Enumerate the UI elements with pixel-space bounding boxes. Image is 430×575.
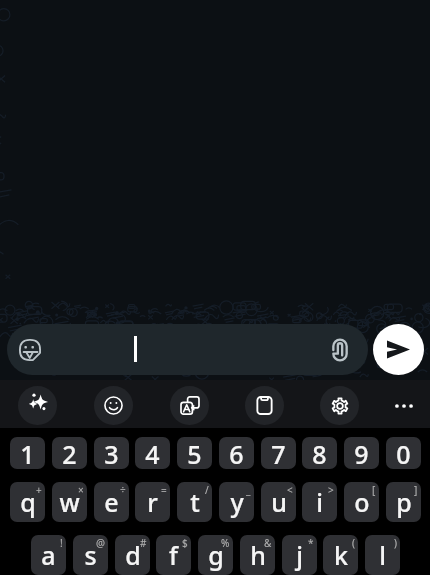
staticText: 8: [312, 437, 327, 469]
button[interactable]: t: [177, 482, 212, 522]
staticText: k: [334, 538, 348, 572]
staticText: r: [147, 485, 158, 519]
button[interactable]: y: [219, 482, 254, 522]
staticText: l: [379, 538, 386, 572]
staticText: >: [328, 483, 334, 497]
staticText: ]: [414, 483, 418, 497]
staticText: 5: [187, 437, 202, 469]
button[interactable]: a: [31, 535, 66, 575]
staticText: e: [104, 485, 119, 519]
button[interactable]: 5: [177, 437, 212, 469]
staticText: 4: [145, 437, 160, 469]
staticText: $: [182, 536, 188, 550]
button[interactable]: Send: [373, 324, 424, 375]
staticText: y: [230, 485, 244, 519]
staticText: p: [396, 485, 412, 519]
staticText: i: [316, 485, 323, 519]
staticText: #: [140, 536, 147, 550]
staticText: u: [271, 485, 287, 519]
button[interactable]: 2: [52, 437, 87, 469]
staticText: w: [59, 485, 80, 519]
staticText: h: [250, 538, 266, 572]
staticText: 6: [229, 437, 244, 469]
button[interactable]: s: [73, 535, 108, 575]
button[interactable]: j: [282, 535, 317, 575]
button[interactable]: 6: [219, 437, 254, 469]
button[interactable]: o: [344, 482, 379, 522]
button[interactable]: p: [386, 482, 421, 522]
button[interactable]: r: [135, 482, 170, 522]
button[interactable]: 1: [10, 437, 45, 469]
button[interactable]: u: [261, 482, 296, 522]
staticText: 0: [396, 437, 411, 469]
button[interactable]: q: [10, 482, 45, 522]
staticText: 1: [20, 437, 35, 469]
button[interactable]: l: [365, 535, 400, 575]
staticText: g: [208, 538, 224, 572]
button[interactable]: Stickers: [7, 324, 368, 375]
staticText: @: [96, 536, 105, 550]
staticText: j: [296, 538, 303, 572]
staticText: f: [169, 538, 178, 572]
button[interactable]: f: [156, 535, 191, 575]
staticText: ÷: [120, 483, 126, 497]
button[interactable]: Clipboard: [245, 386, 284, 425]
staticText: *: [308, 536, 314, 550]
button[interactable]: w: [52, 482, 87, 522]
staticText: a: [41, 538, 56, 572]
button[interactable]: h: [240, 535, 275, 575]
button[interactable]: Emoji: [94, 386, 133, 425]
button[interactable]: Stickers: [19, 339, 41, 361]
staticText: <: [287, 483, 293, 497]
button[interactable]: Translate: [170, 386, 209, 425]
staticText: o: [354, 485, 370, 519]
staticText: =: [161, 483, 167, 497]
button[interactable]: Settings: [320, 386, 359, 425]
staticText: &: [264, 536, 272, 550]
button[interactable]: 8: [302, 437, 337, 469]
button[interactable]: More options: [384, 386, 423, 425]
button[interactable]: 9: [344, 437, 379, 469]
button[interactable]: 7: [261, 437, 296, 469]
staticText: d: [125, 538, 141, 572]
button[interactable]: 3: [94, 437, 129, 469]
button[interactable]: g: [198, 535, 233, 575]
staticText: [: [372, 483, 376, 497]
staticText: !: [60, 536, 63, 550]
staticText: ): [394, 536, 397, 550]
staticText: +: [36, 483, 42, 497]
button[interactable]: i: [302, 482, 337, 522]
staticText: /: [205, 483, 209, 497]
button[interactable]: AI assist: [18, 386, 57, 425]
button[interactable]: k: [323, 535, 358, 575]
staticText: 9: [354, 437, 369, 469]
staticText: 3: [104, 437, 119, 469]
staticText: q: [20, 485, 36, 519]
button[interactable]: d: [115, 535, 150, 575]
button[interactable]: 4: [135, 437, 170, 469]
staticText: s: [84, 538, 97, 572]
button[interactable]: 0: [386, 437, 421, 469]
staticText: _: [246, 483, 251, 497]
staticText: 7: [271, 437, 286, 469]
staticText: 2: [62, 437, 77, 469]
staticText: ×: [78, 483, 84, 497]
staticText: t: [190, 485, 200, 519]
button[interactable]: Attach: [325, 338, 355, 362]
staticText: (: [352, 536, 355, 550]
staticText: %: [221, 536, 230, 550]
button[interactable]: e: [94, 482, 129, 522]
